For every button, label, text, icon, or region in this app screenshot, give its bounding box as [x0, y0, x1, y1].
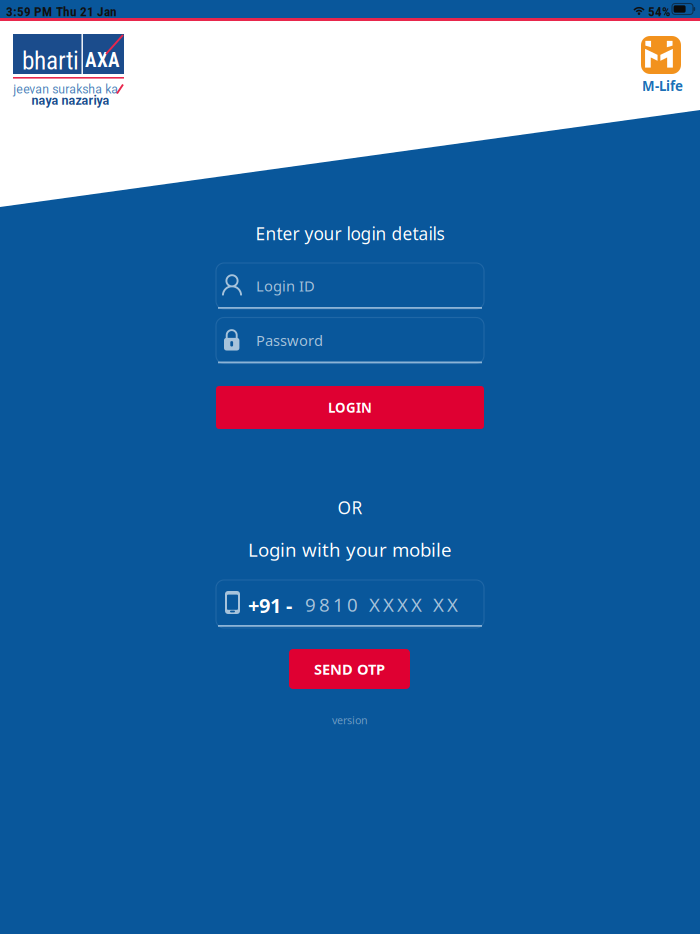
staticText: Thu 21 Jan	[56, 4, 117, 20]
staticText: +91 -	[248, 592, 292, 619]
button[interactable]: Password	[216, 317, 484, 363]
button[interactable]: SEND OTP	[289, 649, 410, 689]
staticText: LOGIN	[328, 399, 372, 416]
staticText: version	[332, 713, 368, 727]
staticText: M-Life	[642, 77, 683, 95]
staticText: jeevan suraksha ka	[13, 82, 118, 96]
button[interactable]: +91 -	[216, 580, 484, 628]
staticText: 9810 XXXX XX	[305, 592, 458, 617]
button[interactable]: M-Life	[641, 36, 683, 94]
button[interactable]: LOGIN	[216, 386, 484, 429]
staticText: OR	[337, 496, 362, 519]
staticText: SEND OTP	[314, 659, 385, 679]
staticText: Password	[256, 330, 323, 350]
staticText: Login with your mobile	[248, 537, 452, 562]
staticText: AXA	[85, 49, 120, 72]
staticText: Login ID	[256, 276, 315, 295]
button[interactable]: Login ID	[216, 263, 484, 309]
staticText: Enter your login details	[255, 222, 444, 245]
staticText: 54%	[648, 4, 671, 20]
staticText: naya nazariya	[31, 93, 109, 108]
staticText: bharti	[22, 46, 79, 76]
staticText: 3:59 PM	[6, 4, 52, 20]
